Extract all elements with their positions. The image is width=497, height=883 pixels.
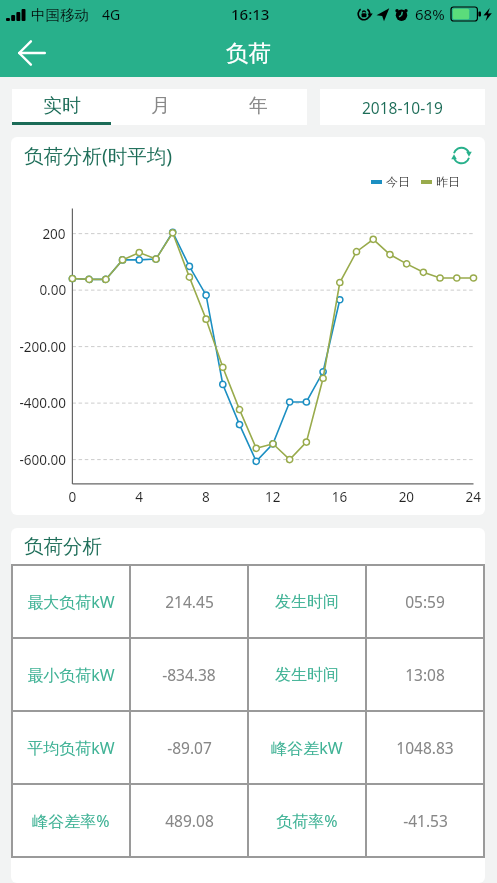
staticText: 实时 [43,94,81,118]
staticText: 16:13 [231,4,270,24]
staticText: 中国移动 [31,6,89,24]
staticText: 最小负荷kW [27,664,115,686]
staticText: 最大负荷kW [27,591,115,613]
staticText: 13:08 [405,664,445,685]
staticText: -89.07 [167,737,212,758]
staticText: 平均负荷kW [27,737,115,759]
staticText: 负荷分析 [24,534,102,559]
staticText: 1048.83 [396,737,454,758]
staticText: 峰谷差率% [32,810,110,832]
staticText: 负荷分析(时平均) [24,142,173,169]
button[interactable]: 月 [111,89,209,125]
staticText: 4G [102,5,121,24]
staticText: 2018-10-19 [362,97,443,118]
staticText: 昨日 [436,174,460,189]
staticText: -834.38 [162,664,216,685]
staticText: 负荷 [226,39,271,67]
button[interactable]: 实时 [12,89,111,125]
button[interactable]: 2018-10-19 [320,89,485,125]
staticText: 发生时间 [275,665,339,685]
staticText: 年 [249,94,268,118]
button[interactable]: 年 [209,89,307,125]
button[interactable]: Refresh [448,142,474,168]
staticText: -41.53 [403,810,448,831]
staticText: 峰谷差kW [271,737,343,759]
staticText: 月 [151,94,170,118]
staticText: 68% [415,4,445,24]
staticText: 发生时间 [275,592,339,612]
staticText: 05:59 [405,591,445,612]
staticText: 负荷率% [276,810,338,832]
staticText: 214.45 [165,591,214,612]
staticText: 今日 [386,174,410,189]
button[interactable]: Back [10,30,54,76]
staticText: 489.08 [165,810,214,831]
